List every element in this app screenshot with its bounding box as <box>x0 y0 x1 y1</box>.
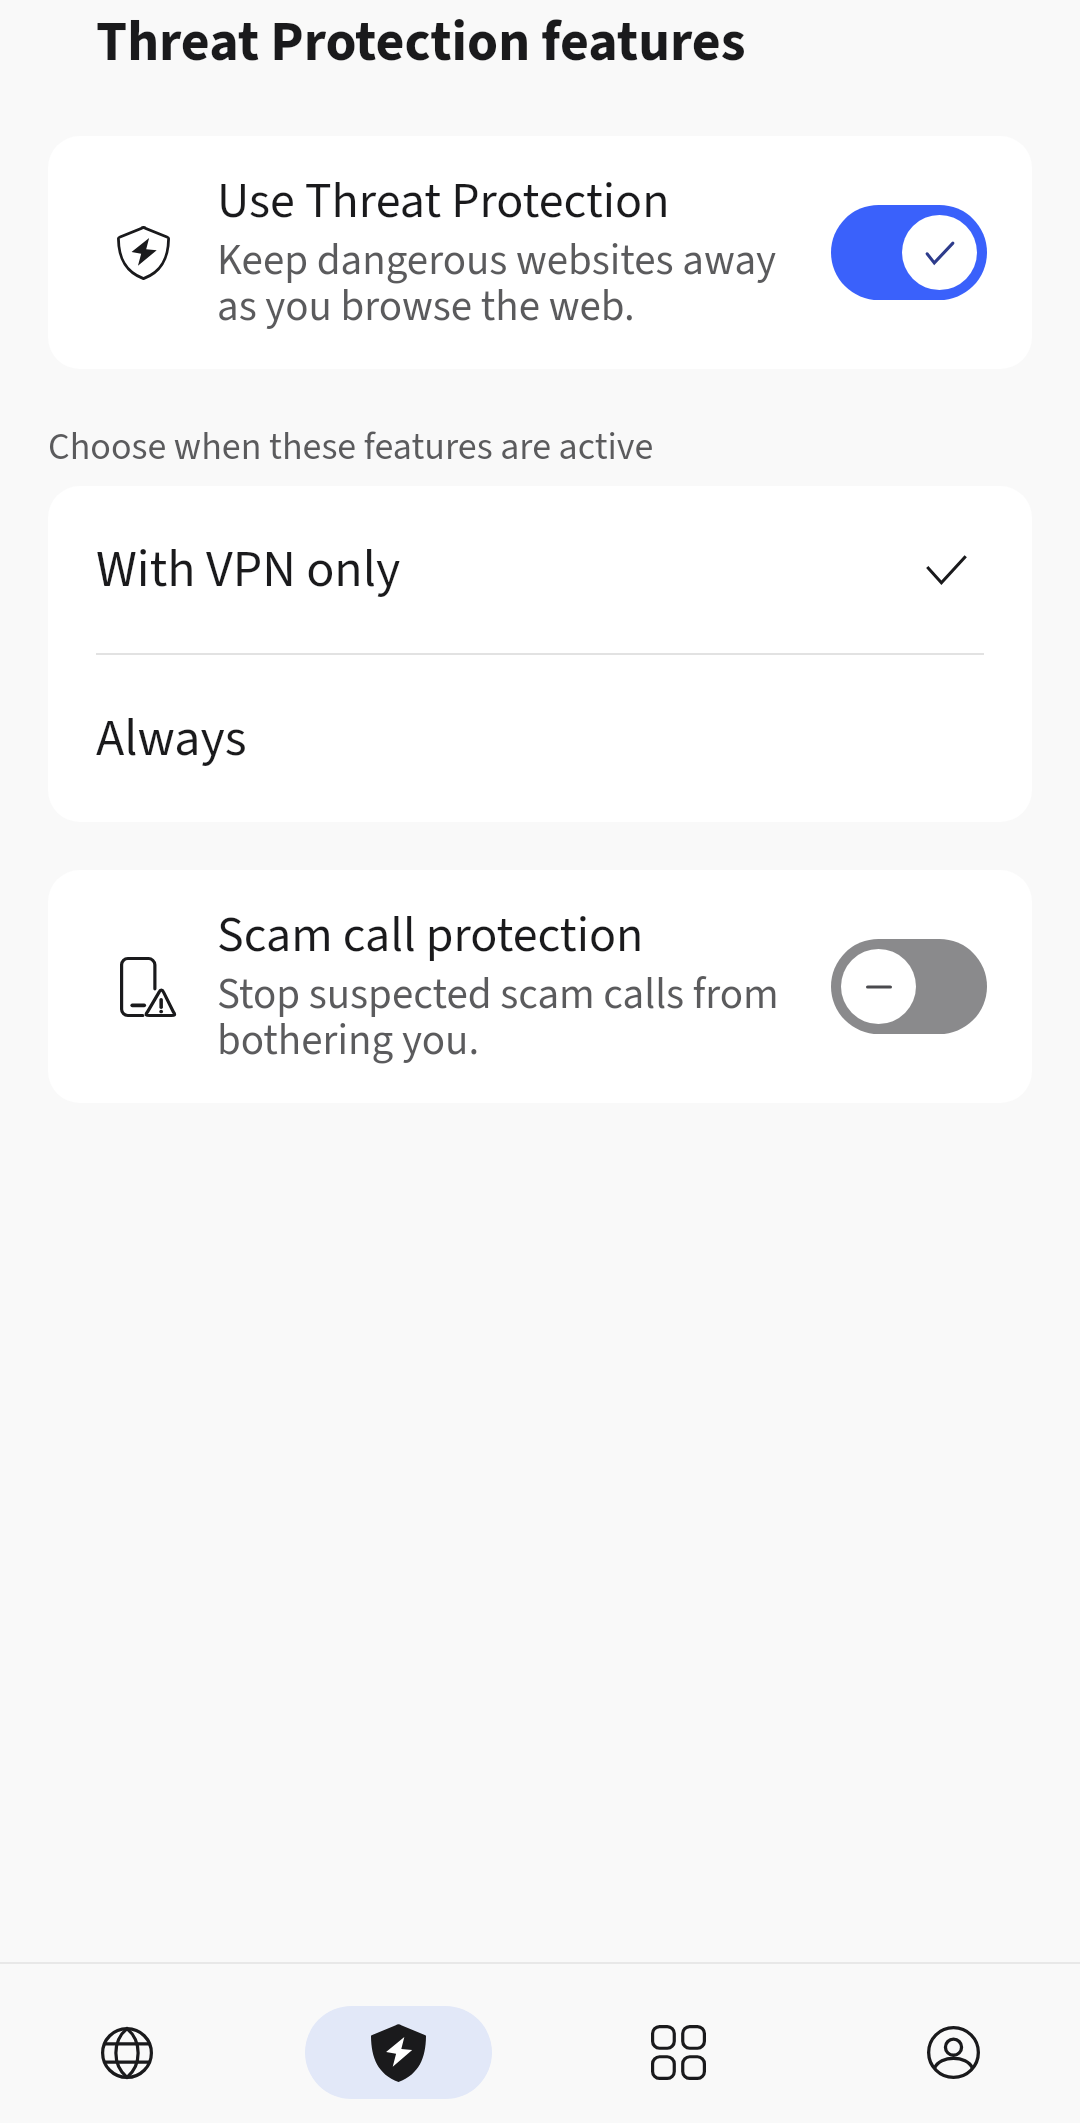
button[interactable]: Use Threat Protection <box>48 136 1032 369</box>
staticText: Choose when these features are active <box>48 420 654 474</box>
staticText: Stop suspected scam calls from bothering… <box>217 964 779 1071</box>
button[interactable]: Threat Protection <box>305 2006 492 2099</box>
button[interactable]: Web <box>33 2006 220 2099</box>
staticText: Scam call protection <box>217 900 644 971</box>
staticText: Use Threat Protection <box>217 166 670 237</box>
staticText: Keep dangerous websites away as you brow… <box>217 230 777 337</box>
staticText: With VPN only <box>96 533 401 607</box>
button[interactable]: Apps <box>585 2006 772 2099</box>
button[interactable]: Scam call protection toggle <box>831 939 987 1034</box>
button[interactable]: Always <box>48 655 1032 822</box>
button[interactable]: Scam call protection <box>48 870 1032 1103</box>
button[interactable]: With VPN only <box>48 486 1032 653</box>
staticText: Threat Protection features <box>96 3 746 83</box>
button[interactable]: Account <box>860 2006 1047 2099</box>
button[interactable]: Use Threat Protection toggle <box>831 205 987 300</box>
staticText: Always <box>96 702 247 776</box>
